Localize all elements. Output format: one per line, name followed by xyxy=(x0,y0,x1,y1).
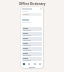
button[interactable]: Search xyxy=(22,13,42,16)
button[interactable]: Tab xyxy=(33,62,37,66)
button[interactable] xyxy=(22,27,42,31)
button[interactable] xyxy=(22,47,42,51)
button[interactable] xyxy=(22,57,42,61)
button[interactable]: Tab xyxy=(27,62,31,66)
button[interactable] xyxy=(22,52,42,56)
button[interactable] xyxy=(22,42,42,46)
button[interactable] xyxy=(22,32,42,36)
button[interactable]: Tab xyxy=(22,62,26,66)
button[interactable] xyxy=(22,37,42,41)
staticText: Offline Dictionary xyxy=(19,2,46,6)
button[interactable]: Tab xyxy=(38,62,42,66)
